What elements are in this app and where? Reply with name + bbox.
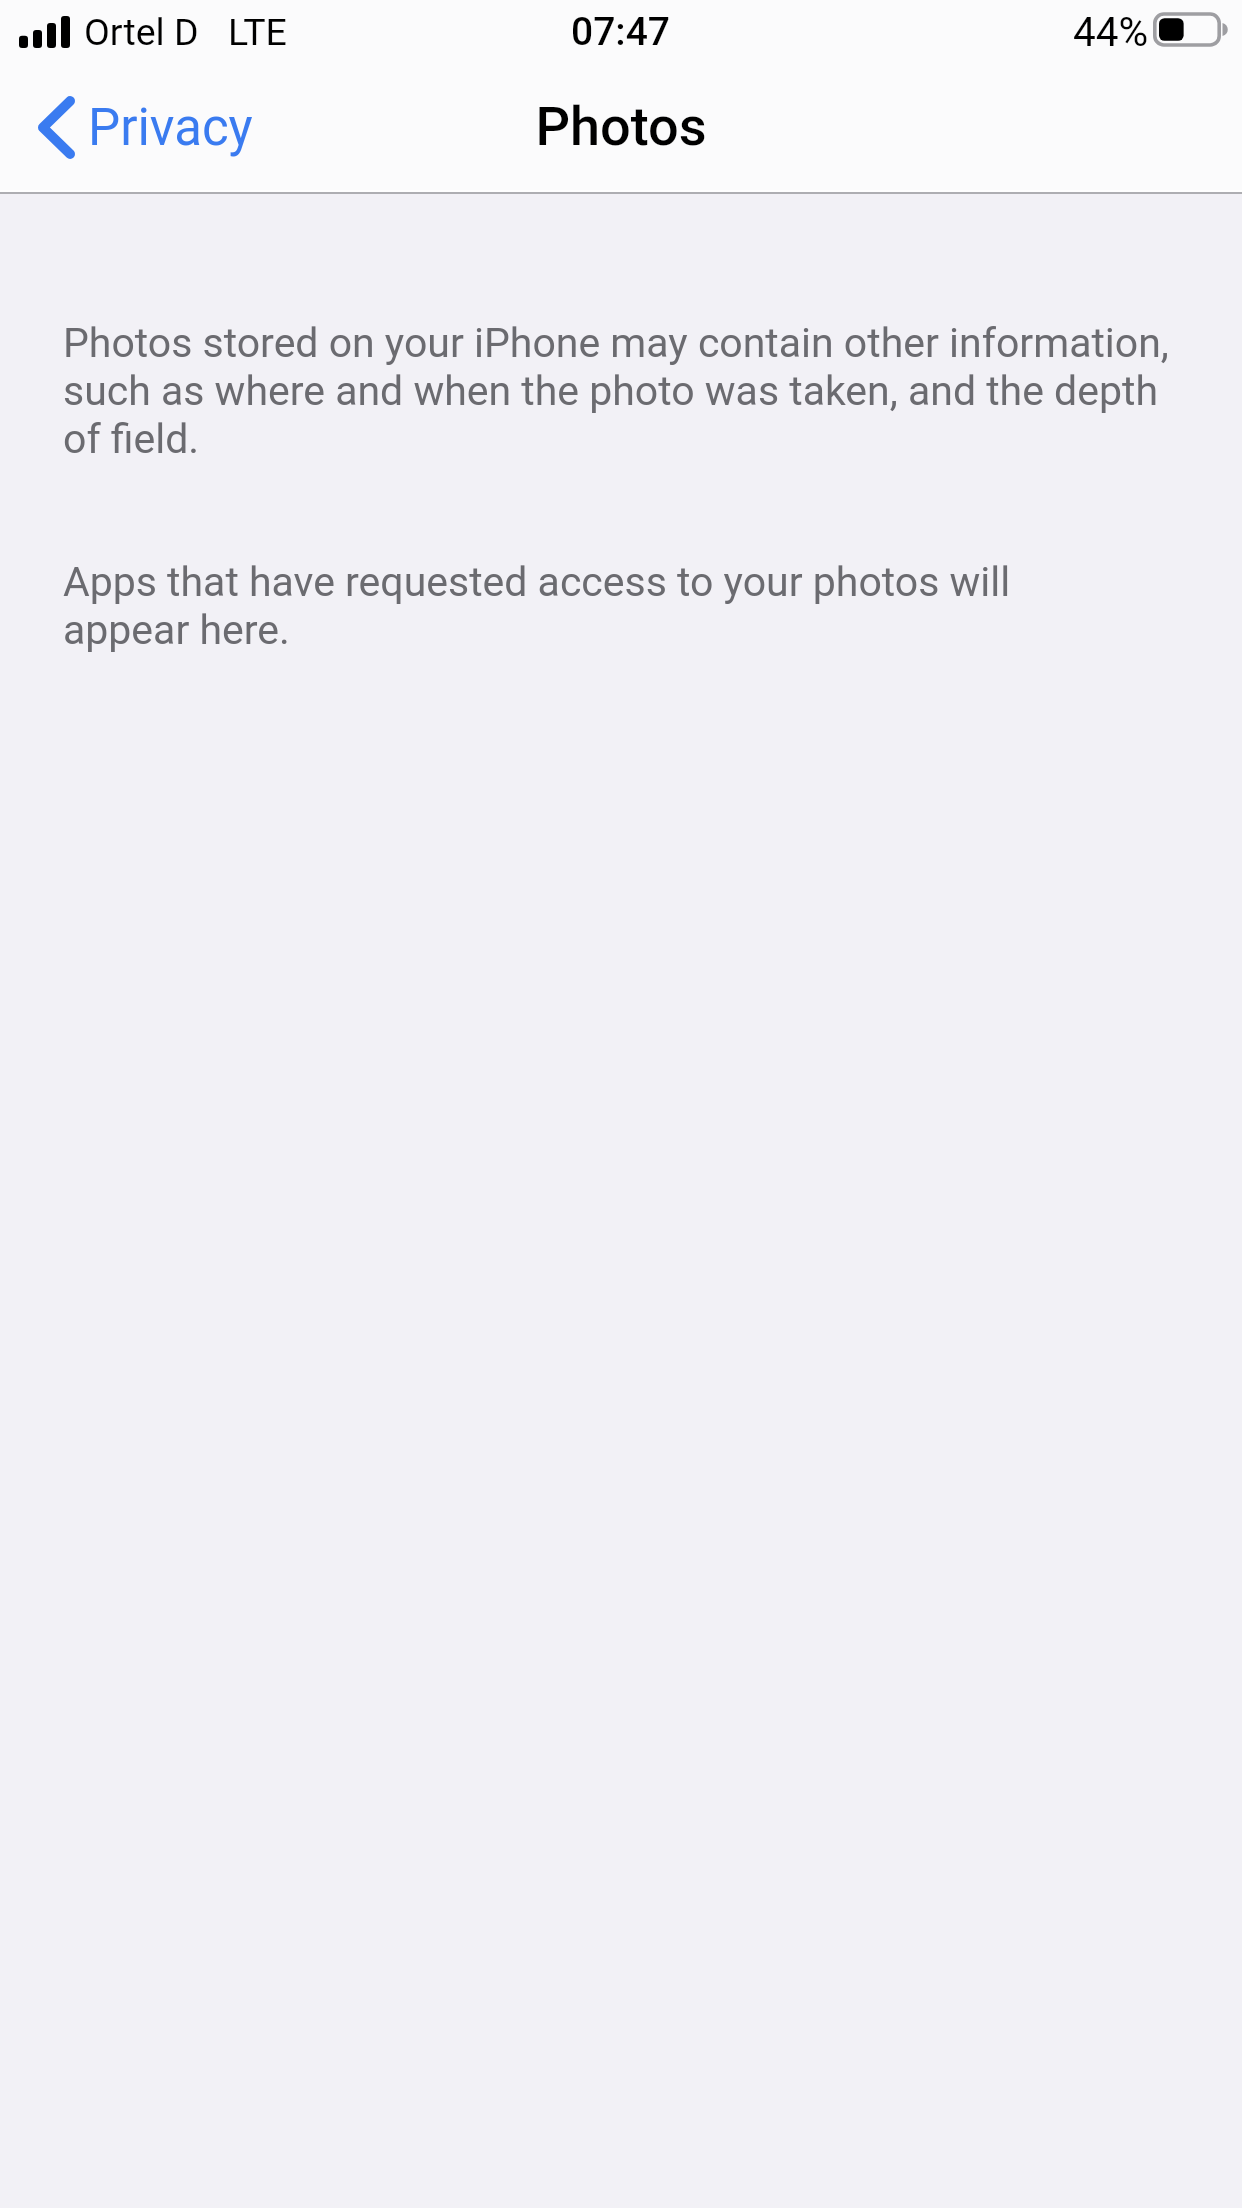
button[interactable]: Back to Privacy (32, 92, 259, 163)
other: Cellular signal strength (19, 16, 70, 48)
staticText: 07:47 (571, 9, 671, 55)
staticText: Ortel D (84, 10, 199, 54)
staticText: Photos stored on your iPhone may contain… (63, 319, 1169, 463)
staticText: Apps that have requested access to your … (63, 558, 1011, 654)
staticText: 44% (1073, 8, 1149, 55)
staticText: Photos (535, 95, 707, 158)
staticText: LTE (228, 10, 287, 54)
other: Battery 44 percent (1153, 12, 1227, 47)
staticText: Privacy (88, 98, 253, 158)
